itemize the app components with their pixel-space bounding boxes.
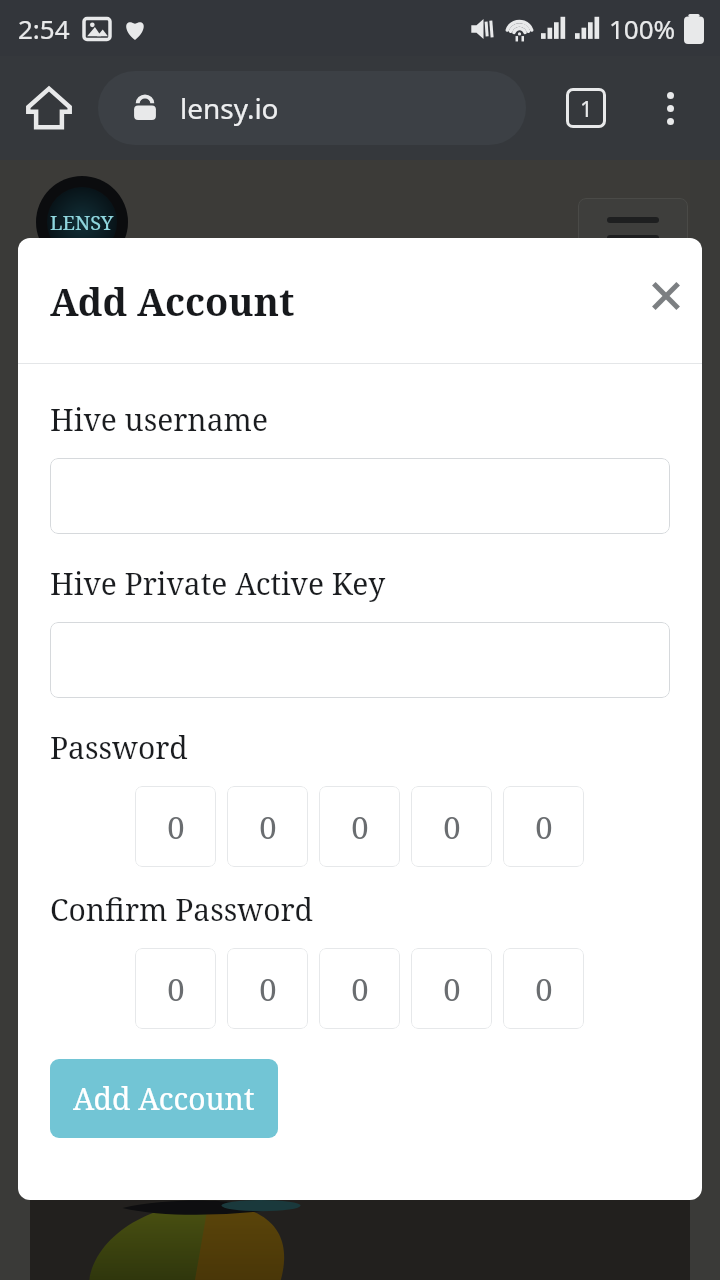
staticText: LENSY <box>50 209 114 236</box>
staticText: Add Account <box>73 1078 255 1119</box>
staticText: Hive Private Active Key <box>50 563 386 604</box>
staticText: 100% <box>609 11 676 46</box>
button[interactable]: 0 <box>319 948 400 1029</box>
staticText: 0 <box>259 968 277 1010</box>
staticText: 0 <box>259 806 277 848</box>
staticText: lensy.io <box>180 89 279 127</box>
staticText: 0 <box>351 806 369 848</box>
staticText: 0 <box>535 968 553 1010</box>
button[interactable]: Home <box>22 81 76 135</box>
button[interactable]: 0 <box>135 948 216 1029</box>
staticText: Confirm Password <box>50 889 314 930</box>
button[interactable]: Close <box>636 266 696 326</box>
button[interactable]: 0 <box>135 786 216 867</box>
staticText: 2:54 <box>18 11 70 46</box>
staticText: 0 <box>443 806 461 848</box>
button[interactable]: 0 <box>503 786 584 867</box>
button[interactable]: lensy.io <box>98 71 526 145</box>
button[interactable]: More options <box>644 82 696 134</box>
staticText: 1 <box>580 93 593 123</box>
button[interactable]: Add Account <box>50 1059 278 1138</box>
staticText: 0 <box>167 968 185 1010</box>
button[interactable]: 0 <box>319 786 400 867</box>
staticText: 0 <box>535 806 553 848</box>
button[interactable]: 0 <box>227 948 308 1029</box>
button[interactable]: 0 <box>411 948 492 1029</box>
button[interactable] <box>50 458 670 534</box>
staticText: 0 <box>167 806 185 848</box>
button[interactable]: 0 <box>227 786 308 867</box>
staticText: 0 <box>351 968 369 1010</box>
staticText: Hive username <box>50 399 269 440</box>
button[interactable]: Menu <box>578 198 688 260</box>
button[interactable]: 0 <box>411 786 492 867</box>
staticText: Add Account <box>50 275 295 327</box>
staticText: Password <box>50 727 188 768</box>
button[interactable] <box>50 622 670 698</box>
button[interactable]: Tabs <box>560 82 612 134</box>
button[interactable]: 0 <box>503 948 584 1029</box>
staticText: 0 <box>443 968 461 1010</box>
